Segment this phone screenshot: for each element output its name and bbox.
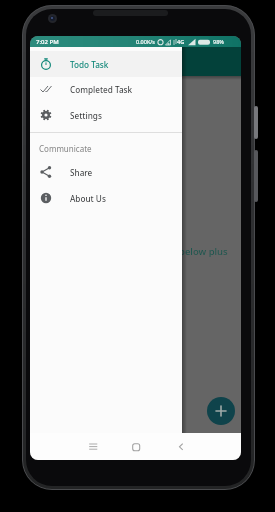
staticText: below plus (179, 245, 228, 258)
staticText: Completed Task (70, 84, 133, 95)
staticText: Todo Task (70, 59, 109, 70)
staticText: 4G (177, 38, 185, 45)
staticText: 98% (213, 38, 224, 45)
button[interactable]: Completed Task (30, 76, 182, 102)
staticText: 7:02 PM (36, 38, 59, 46)
button[interactable] (207, 397, 235, 425)
staticText: Settings (70, 110, 102, 121)
staticText: About Us (70, 193, 106, 204)
staticText: Share (70, 167, 93, 178)
button[interactable]: About Us (30, 185, 182, 211)
staticText: 0.00K/s (136, 38, 155, 45)
button[interactable]: Share (30, 159, 182, 185)
staticText: Communicate (39, 143, 92, 154)
button[interactable]: Settings (30, 102, 182, 128)
button[interactable]: Todo Task (30, 51, 182, 77)
